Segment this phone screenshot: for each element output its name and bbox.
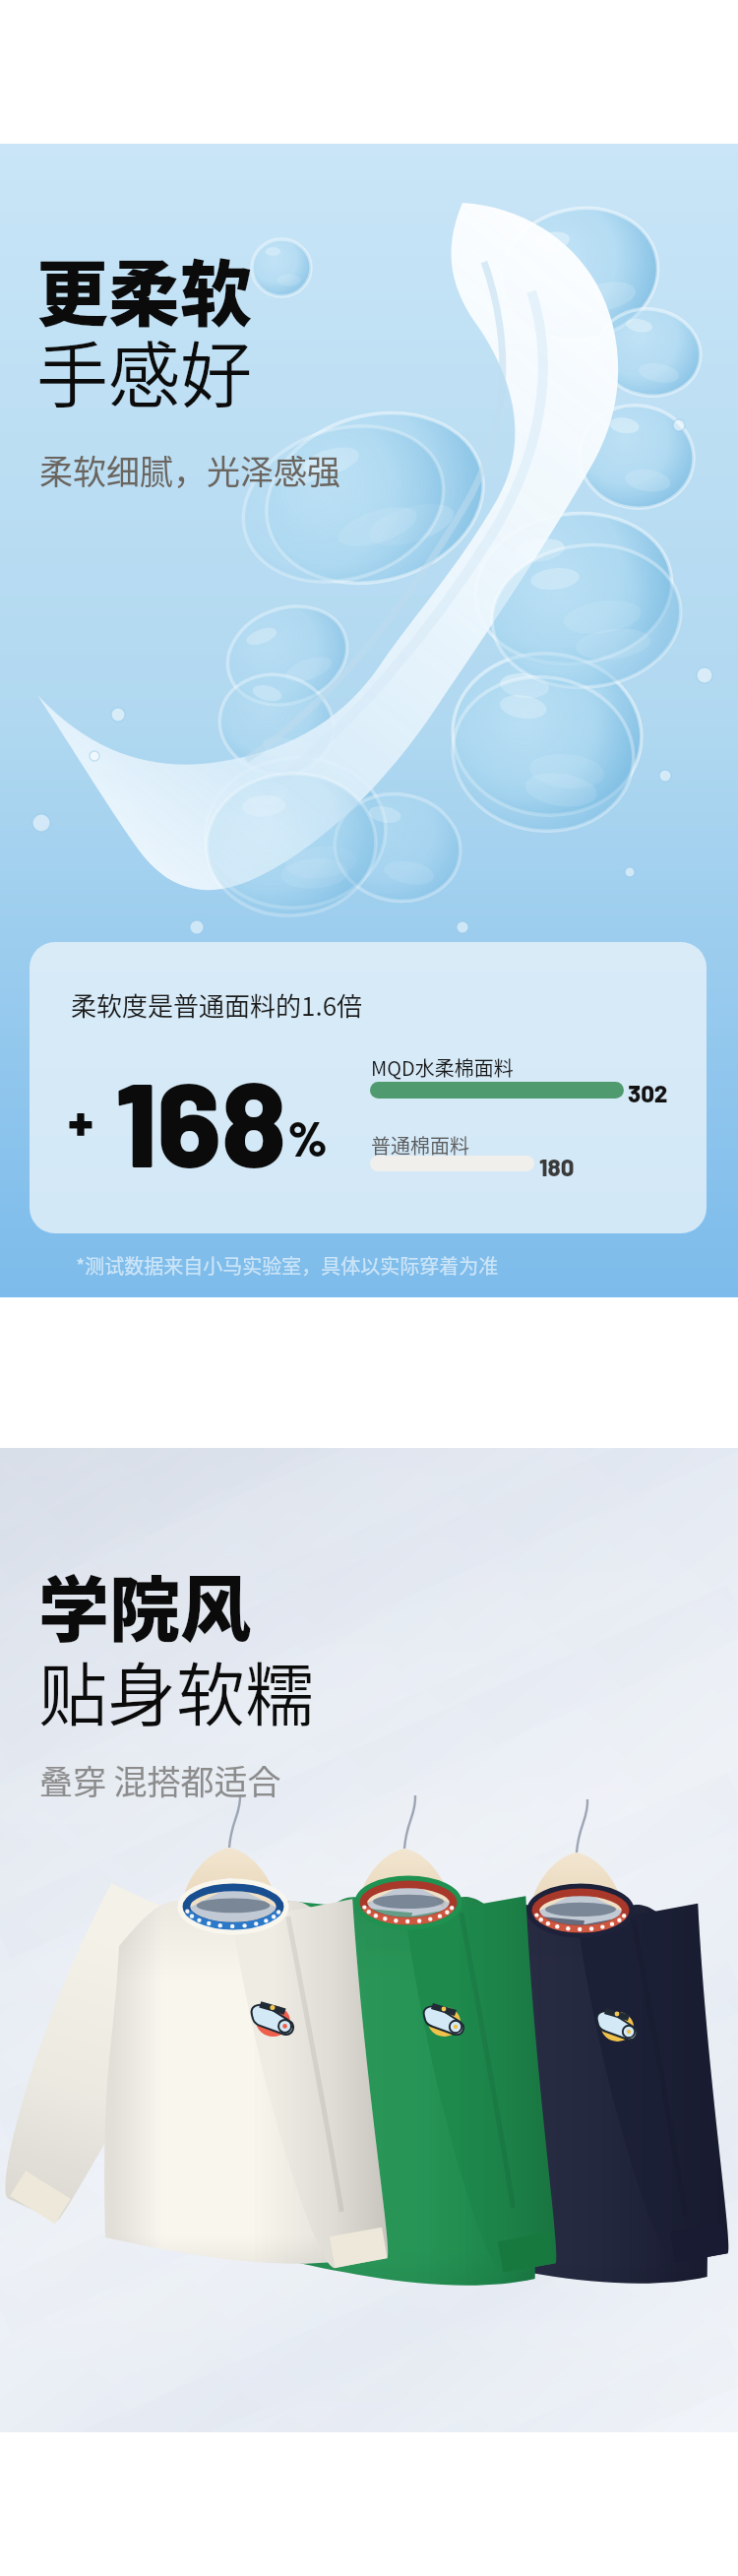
staticText: 柔软细腻，光泽感强 (39, 446, 340, 494)
staticText: 叠穿 混搭都适合 (39, 1756, 281, 1804)
staticText: 手感好 (36, 318, 252, 422)
staticText: % (287, 1107, 328, 1166)
staticText: *测试数据来自小马实验室，具体以实际穿着为准 (76, 1251, 499, 1280)
staticText: 普通棉面料 (371, 1131, 469, 1160)
staticText: MQD水柔棉面料 (371, 1053, 514, 1082)
staticText: 302 (628, 1079, 668, 1107)
staticText: 168 (115, 1049, 286, 1191)
staticText: 柔软度是普通面料的1.6倍 (71, 986, 363, 1024)
staticText: 学院风 (38, 1552, 252, 1655)
staticText: 贴身软糯 (38, 1641, 314, 1740)
staticText: + (68, 1088, 93, 1152)
staticText: 180 (539, 1153, 575, 1181)
staticText: 更柔软 (36, 236, 252, 341)
